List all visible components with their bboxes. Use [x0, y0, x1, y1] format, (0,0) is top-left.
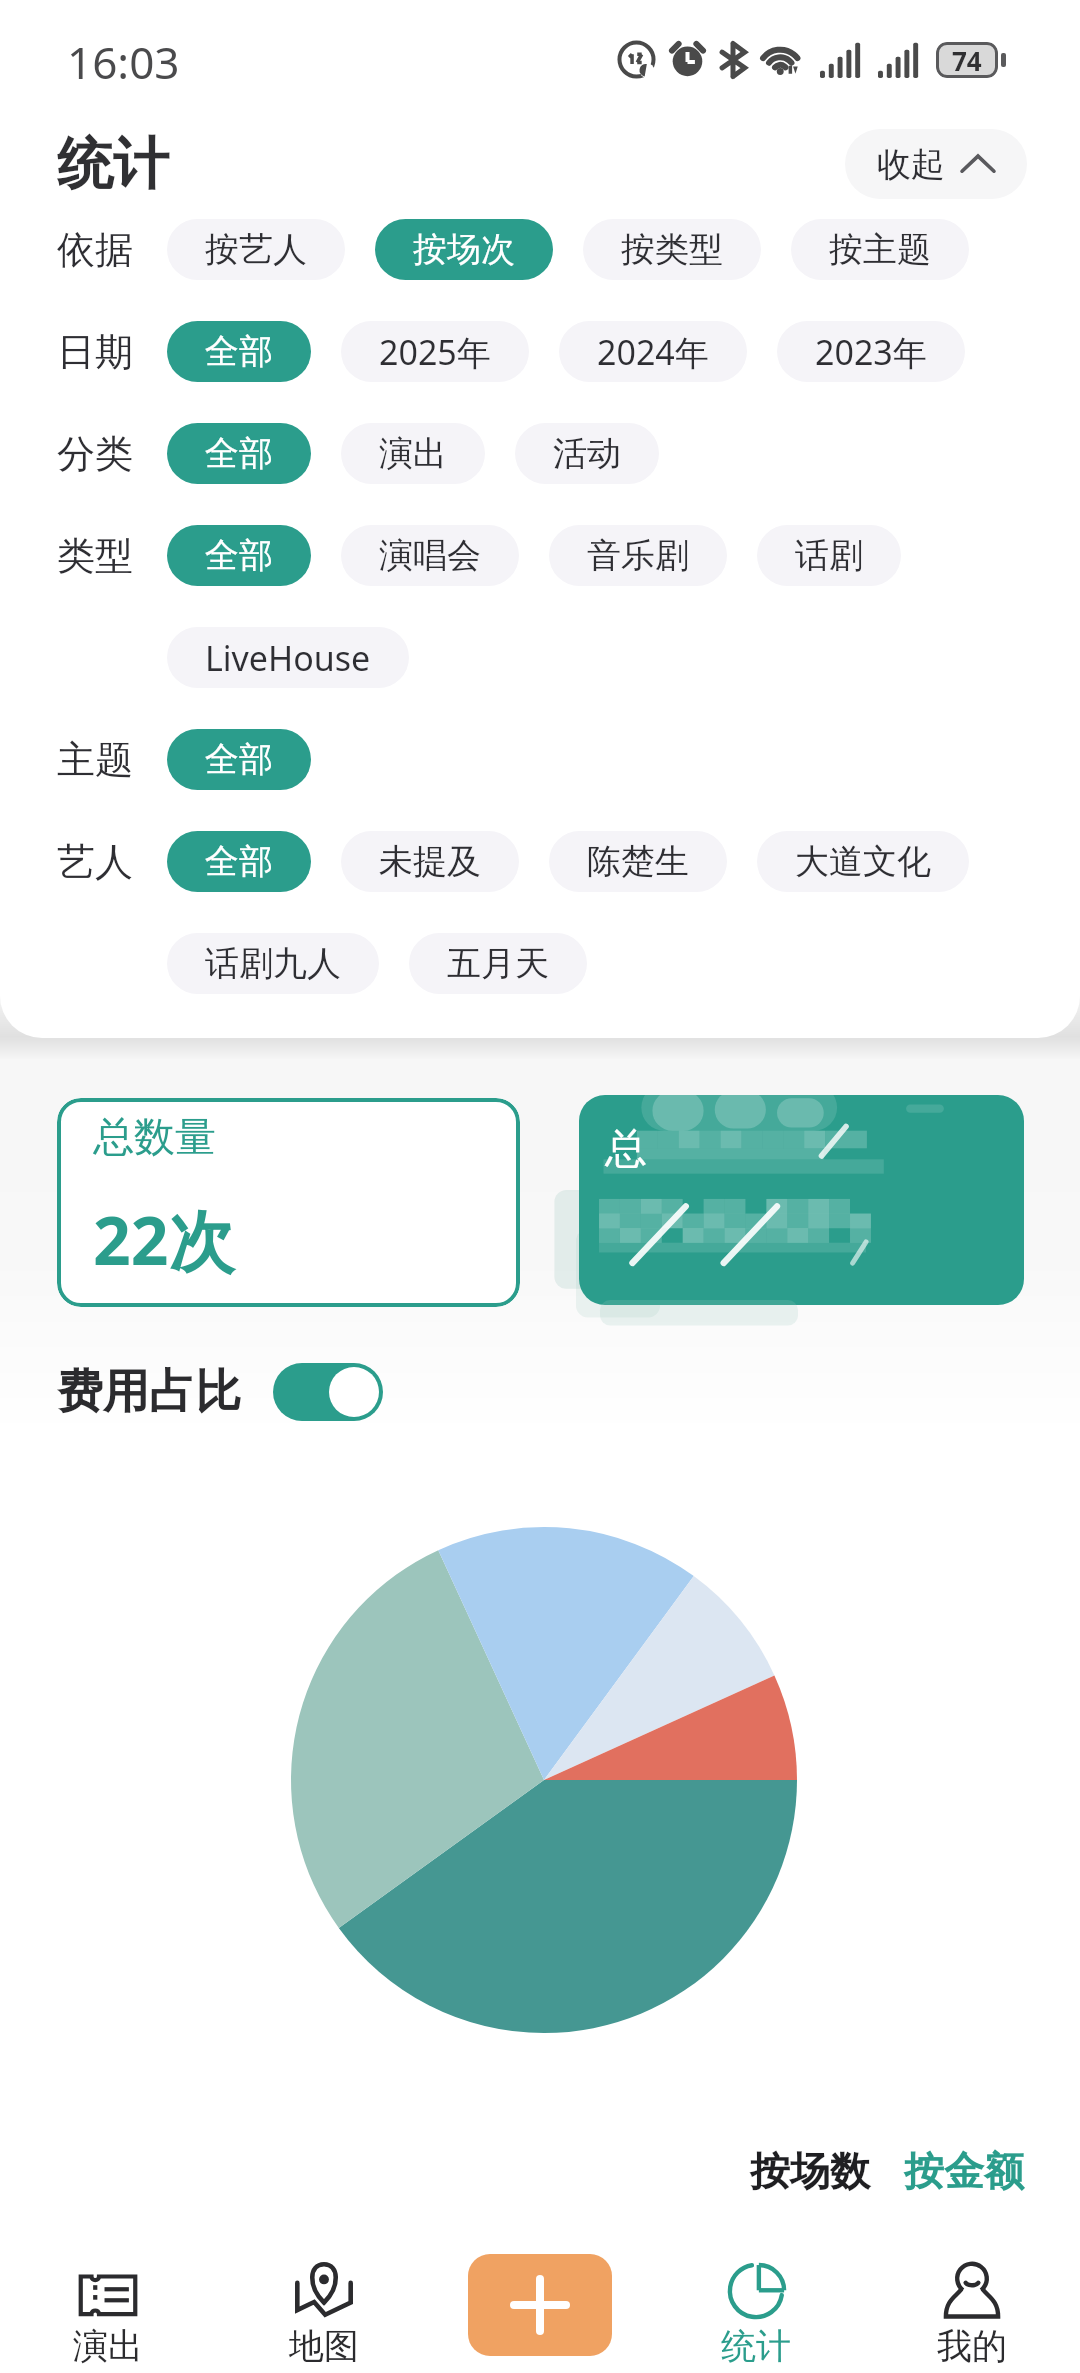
button[interactable]: 全部	[167, 525, 311, 586]
button[interactable]: 大道文化	[757, 831, 969, 892]
staticText: 大道文化	[795, 840, 931, 883]
button[interactable]: 全部	[167, 321, 311, 382]
staticText: 话剧九人	[205, 942, 341, 985]
button[interactable]: 2025年	[341, 321, 529, 382]
button[interactable]: 按金额	[900, 2140, 1028, 2202]
button[interactable]: 陈楚生	[549, 831, 727, 892]
button[interactable]: 按场数	[746, 2140, 874, 2202]
staticText: 活动	[553, 432, 621, 475]
button[interactable]: 全部	[167, 423, 311, 484]
staticText: 地图	[289, 2324, 359, 2368]
button[interactable]: 添加	[468, 2254, 612, 2356]
staticText: 话剧	[795, 534, 863, 577]
staticText: 全部	[205, 432, 273, 475]
button[interactable]: 话剧	[757, 525, 901, 586]
staticText: 全部	[205, 534, 273, 577]
button[interactable]: 活动	[515, 423, 659, 484]
button[interactable]: 全部	[167, 729, 311, 790]
staticText: 总	[605, 1123, 647, 1176]
button[interactable]: 按场次	[375, 219, 553, 280]
button[interactable]: 费用占比开关	[273, 1363, 383, 1421]
button[interactable]: 地图	[216, 2200, 432, 2373]
staticText: 按主题	[829, 228, 931, 271]
staticText: 收起	[877, 143, 945, 186]
staticText: 未提及	[379, 840, 481, 883]
button[interactable]: 2024年	[559, 321, 747, 382]
button[interactable]: 未提及	[341, 831, 519, 892]
staticText: 演唱会	[379, 534, 481, 577]
button[interactable]: 统计	[648, 2200, 864, 2373]
button[interactable]: LiveHouse	[167, 627, 409, 688]
staticText: 全部	[205, 738, 273, 781]
button[interactable]: 收起	[845, 129, 1027, 199]
staticText: 我的	[937, 2324, 1007, 2368]
button[interactable]: 按类型	[583, 219, 761, 280]
staticText: 总数量	[93, 1112, 216, 1164]
button[interactable]: 按艺人	[167, 219, 345, 280]
staticText: 2023年	[815, 329, 927, 375]
button[interactable]: 演出	[341, 423, 485, 484]
staticText: 类型	[57, 532, 133, 580]
staticText: 全部	[205, 840, 273, 883]
button[interactable]: 五月天	[409, 933, 587, 994]
staticText: 统计	[721, 2324, 791, 2368]
staticText: 五月天	[447, 942, 549, 985]
staticText: 分类	[57, 430, 133, 478]
staticText: 音乐剧	[587, 534, 689, 577]
staticText: 按场次	[413, 228, 515, 271]
staticText: 按类型	[621, 228, 723, 271]
button[interactable]: 演出	[0, 2200, 216, 2373]
staticText: 陈楚生	[587, 840, 689, 883]
staticText: 2025年	[379, 329, 491, 375]
staticText: 演出	[73, 2324, 143, 2368]
staticText: 按金额	[904, 2146, 1024, 2196]
staticText: 全部	[205, 330, 273, 373]
staticText: 16:03	[67, 32, 180, 92]
staticText: 日期	[57, 328, 133, 376]
staticText: 按场数	[750, 2146, 870, 2196]
button[interactable]: 总数量	[57, 1098, 520, 1307]
staticText: 22次	[93, 1194, 235, 1284]
button[interactable]: 演唱会	[341, 525, 519, 586]
staticText: 按艺人	[205, 228, 307, 271]
button[interactable]: 音乐剧	[549, 525, 727, 586]
button[interactable]: 全部	[167, 831, 311, 892]
staticText: 74	[952, 43, 982, 78]
button[interactable]: 总金额	[579, 1095, 1024, 1305]
button[interactable]: 我的	[864, 2200, 1080, 2373]
staticText: LiveHouse	[205, 635, 371, 681]
staticText: 演出	[379, 432, 447, 475]
staticText: 艺人	[57, 838, 133, 886]
button[interactable]: 按主题	[791, 219, 969, 280]
staticText: 2024年	[597, 329, 709, 375]
staticText: 依据	[57, 226, 133, 274]
staticText: 统计	[57, 129, 169, 200]
button[interactable]: 话剧九人	[167, 933, 379, 994]
button[interactable]: 2023年	[777, 321, 965, 382]
staticText: 费用占比	[57, 1363, 241, 1421]
staticText: 主题	[57, 736, 133, 784]
